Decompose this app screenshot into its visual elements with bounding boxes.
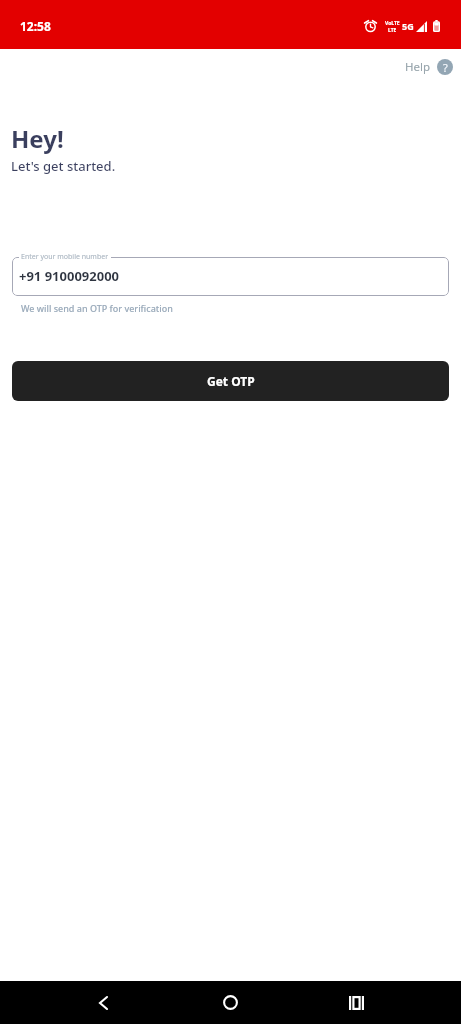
button[interactable]: Home [209, 981, 252, 1024]
button[interactable]: Help [402, 55, 456, 79]
staticText: Get OTP [207, 373, 255, 389]
staticText: 5G [402, 20, 414, 32]
staticText: VoLTE [385, 20, 400, 27]
staticText: Let's get started. [11, 157, 116, 175]
button[interactable]: Get OTP [12, 361, 449, 401]
staticText: Hey! [11, 122, 64, 155]
button[interactable]: Back [82, 981, 125, 1024]
staticText: We will send an OTP for verification [21, 302, 173, 314]
staticText: LTE [388, 27, 397, 34]
staticText: Enter your mobile number [21, 252, 109, 262]
staticText: +91 9100092000 [19, 267, 120, 285]
staticText: ? [443, 60, 448, 75]
staticText: 12:58 [20, 18, 51, 34]
button[interactable]: +91 9100092000 [12, 257, 449, 296]
button[interactable]: Recent apps [335, 981, 378, 1024]
staticText: Help [405, 59, 431, 75]
